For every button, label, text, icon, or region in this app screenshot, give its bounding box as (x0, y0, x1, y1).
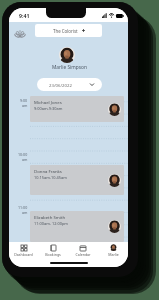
staticText: Dashboard (14, 252, 33, 257)
staticText: Donna Franks (34, 168, 62, 174)
button[interactable]: Brand logo (13, 27, 26, 40)
staticText: am (22, 157, 28, 162)
staticText: The Colorist (53, 28, 78, 34)
button[interactable]: The Colorist (35, 24, 102, 37)
staticText: Marlie Simpson (52, 64, 87, 71)
staticText: 9:00am-9:30am (34, 106, 63, 111)
button[interactable]: Calendar (68, 242, 98, 259)
staticText: Bookings (45, 252, 61, 257)
button[interactable]: Donna Franks (30, 165, 124, 195)
button[interactable]: Michael Jones (30, 96, 124, 122)
staticText: 10.15am-10.45am (34, 175, 67, 180)
staticText: 9:41 (19, 12, 30, 19)
staticText: 11:00 (18, 205, 28, 210)
staticText: Marlie (108, 252, 119, 257)
staticText: Michael Jones (34, 99, 62, 105)
staticText: am (22, 210, 28, 215)
staticText: Elizabeth Smith (34, 214, 66, 220)
button[interactable]: Elizabeth Smith (30, 211, 124, 242)
staticText: 10:00 (18, 152, 28, 157)
button[interactable]: Dashboard (9, 242, 38, 259)
staticText: am (22, 103, 28, 108)
button[interactable]: 23/06/2022 (37, 78, 102, 91)
button[interactable]: Marlie (98, 242, 128, 259)
staticText: 23/06/2022 (49, 82, 72, 88)
button[interactable]: Bookings (38, 242, 68, 259)
staticText: Calendar (75, 252, 91, 257)
staticText: 11:00am- 12:00pm (34, 221, 69, 226)
staticText: 9:00 (20, 98, 28, 103)
